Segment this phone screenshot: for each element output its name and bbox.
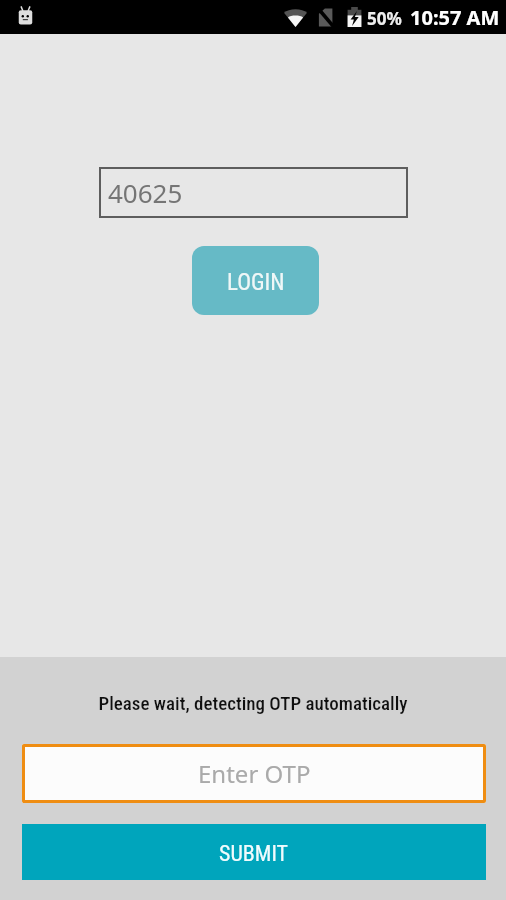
staticText: 10:57 AM: [410, 4, 500, 31]
other: No SIM card: [318, 8, 333, 27]
other: Battery 50 percent, charging: [347, 7, 362, 27]
staticText: LOGIN: [227, 269, 285, 296]
staticText: 40625: [108, 175, 183, 210]
button[interactable]: SUBMIT: [22, 824, 486, 880]
staticText: Enter OTP: [198, 757, 311, 790]
staticText: SUBMIT: [219, 841, 289, 867]
button[interactable]: LOGIN: [192, 246, 319, 315]
button[interactable]: Enter OTP: [22, 744, 486, 803]
staticText: Please wait, detecting OTP automatically: [0, 692, 506, 714]
staticText: 50%: [367, 7, 402, 30]
button[interactable]: 40625: [99, 167, 408, 218]
other: Wi-Fi: [284, 8, 307, 27]
other: Notification: [18, 6, 33, 25]
